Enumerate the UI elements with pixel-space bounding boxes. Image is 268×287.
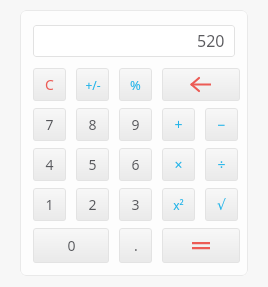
button[interactable]: √ bbox=[205, 188, 238, 221]
button[interactable]: 520 bbox=[33, 25, 235, 57]
button[interactable]: Backspace bbox=[162, 68, 240, 101]
button[interactable]: 3 bbox=[119, 188, 152, 221]
staticText: x² bbox=[173, 197, 184, 213]
staticText: 3 bbox=[131, 195, 140, 214]
staticText: 0 bbox=[67, 236, 76, 255]
staticText: 520 bbox=[197, 30, 225, 52]
staticText: 8 bbox=[88, 115, 97, 134]
button[interactable]: + bbox=[162, 108, 195, 141]
button[interactable]: 7 bbox=[33, 108, 66, 141]
button[interactable]: 6 bbox=[119, 148, 152, 181]
staticText: 1 bbox=[45, 195, 54, 214]
staticText: ÷ bbox=[217, 155, 226, 174]
staticText: 4 bbox=[45, 155, 54, 174]
staticText: . bbox=[134, 236, 138, 255]
staticText: 2 bbox=[88, 195, 97, 214]
staticText: 9 bbox=[131, 115, 140, 134]
button[interactable]: 5 bbox=[76, 148, 109, 181]
button[interactable]: 0 bbox=[33, 228, 109, 263]
staticText: 7 bbox=[45, 115, 54, 134]
staticText: C bbox=[45, 75, 54, 94]
button[interactable]: . bbox=[119, 228, 152, 263]
staticText: × bbox=[174, 155, 183, 174]
button[interactable]: +/- bbox=[76, 68, 109, 101]
button[interactable]: Equals bbox=[162, 228, 240, 263]
button[interactable]: x² bbox=[162, 188, 195, 221]
staticText: √ bbox=[217, 197, 226, 213]
button[interactable]: 1 bbox=[33, 188, 66, 221]
button[interactable]: 9 bbox=[119, 108, 152, 141]
button[interactable]: − bbox=[205, 108, 238, 141]
button[interactable]: 8 bbox=[76, 108, 109, 141]
button[interactable]: 4 bbox=[33, 148, 66, 181]
button[interactable]: 2 bbox=[76, 188, 109, 221]
button[interactable]: % bbox=[119, 68, 152, 101]
staticText: 6 bbox=[131, 155, 140, 174]
staticText: 5 bbox=[88, 155, 97, 174]
staticText: % bbox=[130, 76, 141, 94]
staticText: − bbox=[217, 115, 226, 134]
staticText: +/- bbox=[85, 77, 101, 93]
button[interactable]: C bbox=[33, 68, 66, 101]
button[interactable]: ÷ bbox=[205, 148, 238, 181]
button[interactable]: × bbox=[162, 148, 195, 181]
staticText: + bbox=[174, 115, 183, 134]
